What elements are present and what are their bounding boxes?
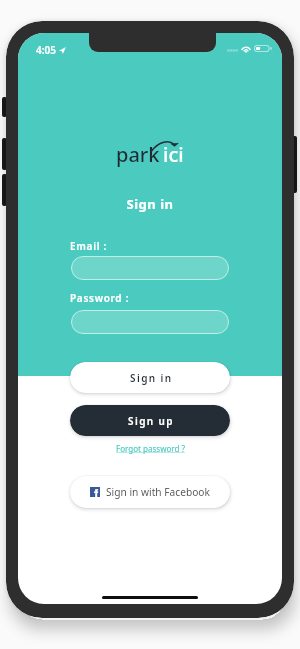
staticText: Sign in [18,195,282,213]
button[interactable]: Forgot password ? [112,442,189,455]
button[interactable] [71,310,229,334]
staticText: ici [163,141,184,168]
staticText: 4:05 [36,43,56,57]
staticText: Sign up [128,414,175,428]
staticText: Sign in [130,371,173,385]
staticText: Sign in with Facebook [106,485,210,499]
button[interactable]: Sign up [70,405,230,436]
staticText: park [116,141,160,168]
staticText: Forgot password ? [116,443,185,454]
staticText: Password : [70,291,282,305]
button[interactable]: Sign in [70,362,230,393]
button[interactable]: Sign in with Facebook [70,476,230,508]
staticText: Email : [70,239,282,253]
button[interactable] [71,256,229,280]
